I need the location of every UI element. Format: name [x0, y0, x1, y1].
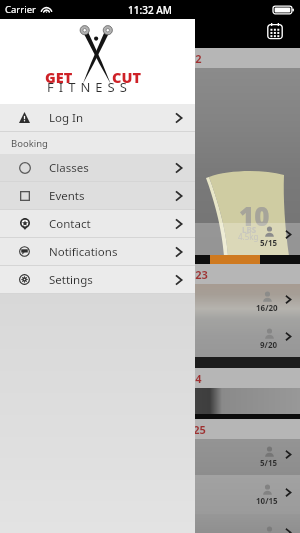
- staticText: Settings: [49, 272, 93, 288]
- staticText: Contact: [49, 216, 91, 232]
- staticText: Notifications: [49, 244, 118, 260]
- staticText: 16/20: [256, 302, 278, 313]
- button[interactable]: 5/15: [0, 439, 300, 475]
- button[interactable]: Classes: [0, 154, 195, 181]
- button[interactable]: 10: [0, 68, 300, 255]
- button[interactable]: 9/20: [0, 320, 300, 357]
- staticText: 11:32 AM: [128, 3, 172, 17]
- staticText: February 25: [141, 422, 206, 437]
- staticText: Log In: [49, 110, 84, 126]
- staticText: LBS: [242, 224, 257, 235]
- staticText: 10: [239, 198, 270, 233]
- staticText: FITNESS: [47, 78, 132, 96]
- staticText: Booking: [11, 137, 48, 150]
- staticText: January 2: [150, 51, 202, 66]
- staticText: 9/20: [260, 339, 278, 350]
- staticText: Carrier: [5, 3, 36, 16]
- button[interactable]: Calendar: [264, 20, 286, 42]
- button[interactable]: Settings: [0, 266, 195, 293]
- staticText: January 23: [150, 267, 208, 282]
- button[interactable]: 16/20: [0, 284, 300, 320]
- staticText: 10/15: [256, 495, 278, 506]
- staticText: February 4: [143, 371, 202, 386]
- button[interactable]: Contact: [0, 210, 195, 237]
- staticText: CUT: [112, 67, 141, 87]
- staticText: 4.5kg: [238, 231, 259, 242]
- button[interactable]: Events: [0, 182, 195, 209]
- button[interactable]: 10/15: [0, 475, 300, 514]
- staticText: GET: [45, 67, 73, 87]
- button[interactable]: [0, 388, 300, 419]
- staticText: Events: [49, 188, 85, 204]
- staticText: 5/15: [260, 237, 278, 248]
- staticText: 5/15: [260, 457, 278, 468]
- button[interactable]: Log In: [0, 104, 195, 131]
- button[interactable]: 7/15: [0, 514, 300, 533]
- staticText: Classes: [49, 160, 89, 176]
- button[interactable]: Notifications: [0, 238, 195, 265]
